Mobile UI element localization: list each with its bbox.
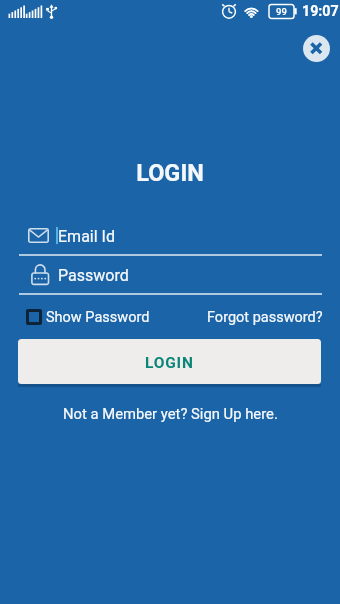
staticText: Email Id bbox=[58, 227, 115, 246]
staticText: 99 bbox=[269, 6, 294, 17]
staticText: LOGIN bbox=[145, 354, 194, 372]
button[interactable] bbox=[303, 35, 330, 62]
staticText: LOGIN bbox=[0, 159, 340, 187]
button[interactable]: Show Password bbox=[46, 309, 150, 326]
button[interactable]: Not a Member yet? Sign Up here. bbox=[63, 405, 278, 422]
staticText: Password bbox=[58, 266, 129, 285]
button[interactable] bbox=[26, 309, 42, 325]
button[interactable]: Forgot password? bbox=[207, 309, 323, 326]
button[interactable]: LOGIN bbox=[18, 339, 321, 384]
staticText: 19:07 bbox=[302, 3, 339, 20]
